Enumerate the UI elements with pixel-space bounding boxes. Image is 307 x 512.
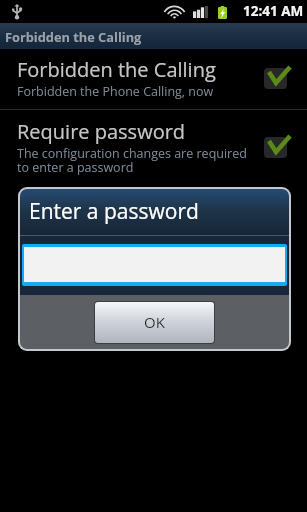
staticText: Forbidden the Phone Calling, now	[17, 83, 214, 100]
button[interactable]: Require password	[0, 118, 307, 176]
staticText: OK	[144, 312, 165, 332]
staticText: The configuration changes are required t…	[17, 145, 247, 176]
button[interactable]: Toggle checkbox	[263, 132, 293, 162]
staticText: 12:41 AM	[243, 2, 304, 20]
button[interactable]: Toggle checkbox	[263, 63, 293, 93]
staticText: Require password	[17, 118, 186, 145]
staticText: Forbidden the Calling	[5, 28, 142, 45]
button[interactable]: Forbidden the Calling	[0, 56, 307, 100]
staticText: Enter a password	[29, 197, 199, 226]
button[interactable]: OK	[95, 302, 214, 343]
staticText: Forbidden the Calling	[17, 56, 216, 83]
